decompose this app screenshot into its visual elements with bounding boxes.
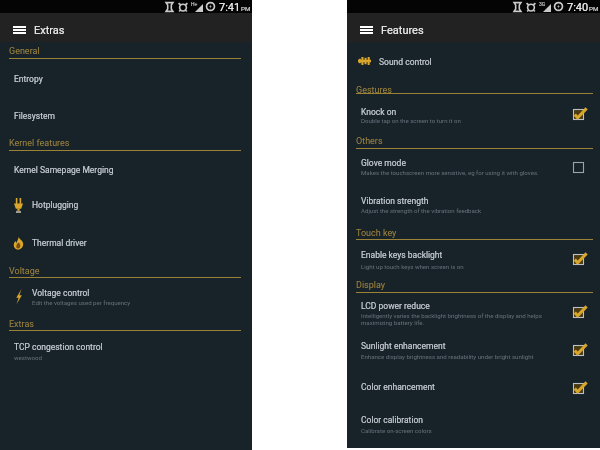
button[interactable]: Knock on: [347, 102, 600, 137]
staticText: Entropy: [14, 74, 43, 84]
staticText: Color enhancement: [361, 382, 435, 392]
staticText: PM: [241, 5, 251, 12]
button[interactable]: Filesystem: [0, 102, 252, 140]
button[interactable]: Kernel Samepage Merging: [0, 156, 252, 191]
button[interactable]: Hotplugging: [0, 191, 252, 229]
staticText: Light up touch keys when screen is on: [361, 263, 464, 270]
staticText: Sound control: [379, 57, 432, 67]
staticText: Features: [381, 24, 424, 37]
button[interactable]: Color calibration: [347, 410, 600, 448]
staticText: LCD power reduce: [361, 301, 430, 311]
staticText: General: [9, 46, 40, 57]
button[interactable]: LCD power reduce: [347, 298, 600, 340]
staticText: Voltage control: [32, 288, 90, 298]
staticText: Color calibration: [361, 415, 423, 425]
staticText: Calibrate on-screen colors: [361, 427, 432, 434]
button[interactable]: Thermal driver: [0, 229, 252, 264]
staticText: PM: [589, 5, 599, 12]
staticText: Kernel features: [9, 138, 70, 149]
staticText: Gestures: [356, 85, 392, 96]
staticText: Kernel Samepage Merging: [14, 165, 114, 175]
staticText: TCP congestion control: [14, 342, 103, 352]
button[interactable]: Open navigation menu: [357, 24, 375, 35]
staticText: 7:41: [219, 1, 241, 14]
button[interactable]: Open navigation menu: [10, 24, 28, 35]
staticText: Voltage: [9, 266, 40, 277]
staticText: Edit the voltages used per frequency: [32, 299, 131, 306]
button[interactable]: Glove mode: [347, 155, 600, 192]
staticText: Adjust the strength of the vibration fee…: [361, 207, 482, 214]
staticText: Double tap on the screen to turn it on: [361, 117, 461, 124]
button[interactable]: Sound control: [347, 48, 600, 80]
staticText: Enable keys backlight: [361, 250, 443, 260]
staticText: Sunlight enhancement: [361, 341, 446, 351]
staticText: Others: [356, 136, 383, 147]
staticText: Knock on: [361, 107, 397, 117]
staticText: Extras: [34, 24, 65, 37]
staticText: westwood: [14, 354, 42, 361]
button[interactable]: Entropy: [0, 64, 252, 102]
staticText: Intelligently varies the backlight brigh…: [361, 312, 563, 326]
button[interactable]: TCP congestion control: [0, 337, 252, 372]
staticText: Extras: [9, 319, 34, 330]
staticText: Display: [356, 280, 386, 291]
staticText: Filesystem: [14, 111, 55, 121]
button[interactable]: Voltage control: [0, 284, 252, 319]
staticText: Makes the touchscreen more sensitive, eg…: [361, 169, 539, 176]
staticText: Hotplugging: [32, 200, 79, 210]
staticText: H+: [191, 1, 198, 7]
staticText: Glove mode: [361, 158, 406, 168]
button[interactable]: Enable keys backlight: [347, 247, 600, 282]
staticText: Thermal driver: [32, 238, 87, 248]
button[interactable]: Color enhancement: [347, 378, 600, 410]
staticText: Touch key: [356, 228, 397, 239]
button[interactable]: Vibration strength: [347, 192, 600, 229]
button[interactable]: Sunlight enhancement: [347, 340, 600, 378]
staticText: 3G: [539, 1, 546, 7]
staticText: 7:40: [567, 1, 589, 14]
staticText: Enhance display brightness and readabili…: [361, 353, 534, 360]
staticText: Vibration strength: [361, 196, 429, 206]
